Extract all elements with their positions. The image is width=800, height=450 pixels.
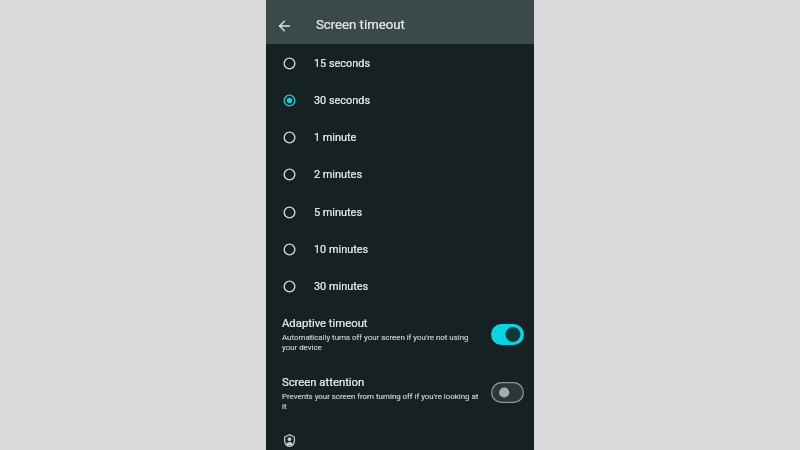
button[interactable]: 30 minutes bbox=[266, 268, 534, 305]
staticText: 15 seconds bbox=[314, 57, 371, 70]
staticText: Automatically turns off your screen if y… bbox=[282, 333, 481, 352]
staticText: Adaptive timeout bbox=[282, 317, 368, 330]
button[interactable]: Screen attention bbox=[266, 370, 534, 422]
staticText: 1 minute bbox=[314, 131, 357, 144]
staticText: 30 seconds bbox=[314, 94, 371, 107]
staticText: Prevents your screen from turning off if… bbox=[282, 392, 481, 411]
button[interactable]: 30 seconds bbox=[266, 82, 534, 119]
staticText: 5 minutes bbox=[314, 206, 362, 219]
button[interactable]: 2 minutes bbox=[266, 156, 534, 193]
button[interactable]: 10 minutes bbox=[266, 231, 534, 268]
staticText: 2 minutes bbox=[314, 168, 362, 181]
button[interactable]: Screen attention, off bbox=[491, 382, 524, 403]
button[interactable]: 1 minute bbox=[266, 119, 534, 156]
button[interactable]: Back bbox=[270, 12, 298, 40]
button[interactable]: Adaptive timeout, on bbox=[491, 324, 524, 345]
staticText: 30 minutes bbox=[314, 280, 369, 293]
staticText: Screen attention bbox=[282, 376, 365, 389]
staticText: Screen timeout bbox=[316, 17, 405, 32]
button[interactable]: 5 minutes bbox=[266, 194, 534, 231]
button[interactable]: 15 seconds bbox=[266, 45, 534, 82]
button[interactable]: Adaptive timeout bbox=[266, 311, 534, 363]
staticText: 10 minutes bbox=[314, 243, 369, 256]
